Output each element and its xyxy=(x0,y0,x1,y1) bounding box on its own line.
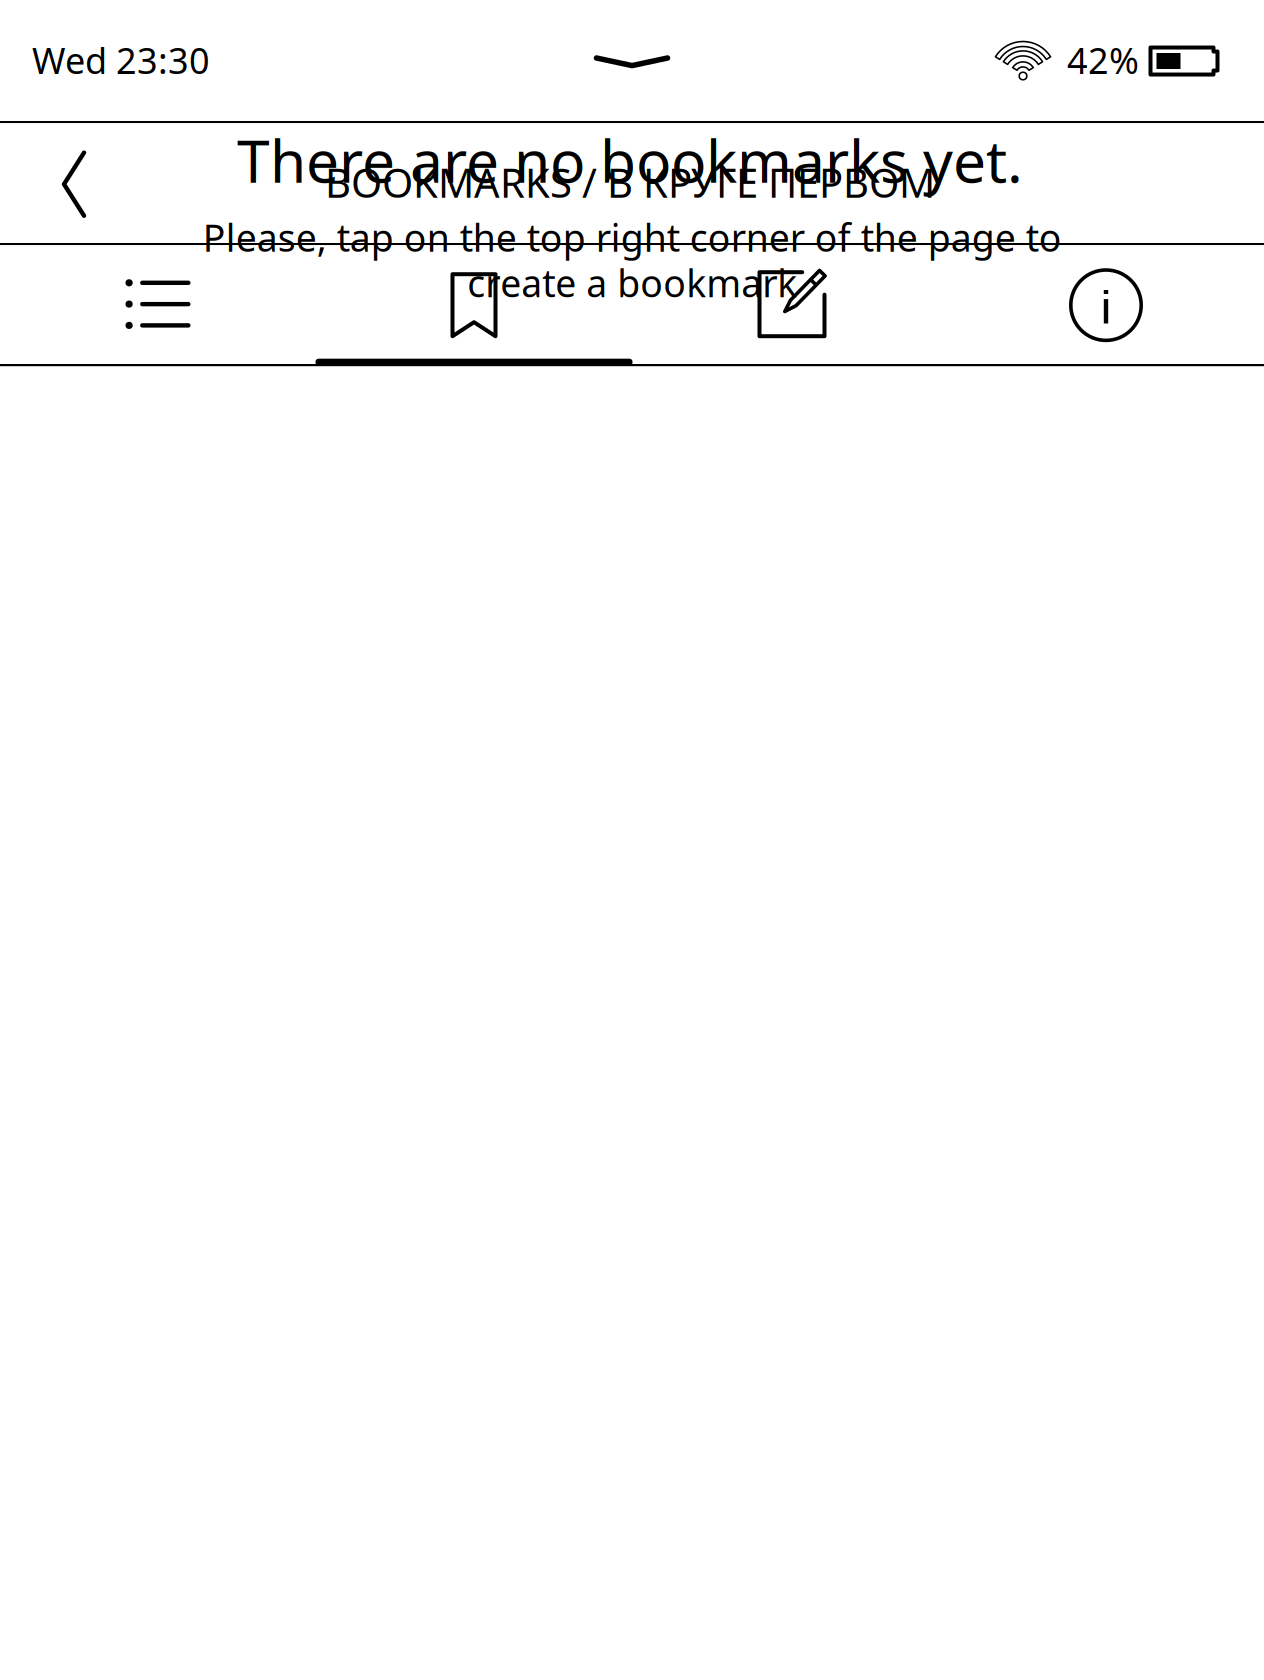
staticText: 42% xyxy=(1067,36,1139,84)
button[interactable]: Bookmarks xyxy=(316,246,632,364)
button[interactable]: Notes xyxy=(636,244,952,362)
staticText: There are no bookmarks yet. xyxy=(237,121,1023,199)
button[interactable]: Back xyxy=(0,124,149,244)
button[interactable]: Information xyxy=(948,246,1264,364)
staticText: Please, tap on the top right corner of t… xyxy=(202,212,1061,308)
staticText: BOOKMARKS / В КРУГЕ ПЕРВОМ xyxy=(325,156,935,209)
button[interactable]: Table of contents xyxy=(0,245,316,363)
button[interactable]: Show notifications xyxy=(552,7,712,117)
staticText: Wed 23:30 xyxy=(32,36,210,84)
